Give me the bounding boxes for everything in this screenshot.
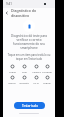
button[interactable]: Sensor xyxy=(6,75,18,84)
button[interactable]: Back xyxy=(3,9,11,17)
staticText: Diagnóstico do dispositivo xyxy=(11,8,55,17)
staticText: Câmera xyxy=(32,70,41,73)
staticText: Diagnóstico dá teste para verificar o co… xyxy=(11,34,47,50)
staticText: Sensor xyxy=(8,81,16,84)
staticText: Vibração xyxy=(19,81,29,84)
button[interactable]: Câmera xyxy=(30,64,42,73)
staticText: Som xyxy=(22,70,27,73)
button[interactable]: Carregar xyxy=(42,64,52,73)
staticText: 9:41 xyxy=(6,2,12,6)
staticText: Toque xyxy=(9,70,16,73)
button[interactable]: Toque xyxy=(6,64,18,73)
button[interactable]: Wi-Fi xyxy=(30,75,42,84)
staticText: Carregar xyxy=(42,70,52,73)
button[interactable]: Digital xyxy=(42,75,52,84)
staticText: Digital xyxy=(43,81,51,84)
button[interactable]: Testar tudo xyxy=(14,102,45,109)
staticText: Wi-Fi xyxy=(33,81,39,84)
staticText: Toque em um item para testá-lo ou toque … xyxy=(7,53,51,60)
button[interactable]: Vibração xyxy=(18,75,30,84)
staticText: Testar tudo xyxy=(22,104,38,108)
button[interactable]: Som xyxy=(18,64,30,73)
